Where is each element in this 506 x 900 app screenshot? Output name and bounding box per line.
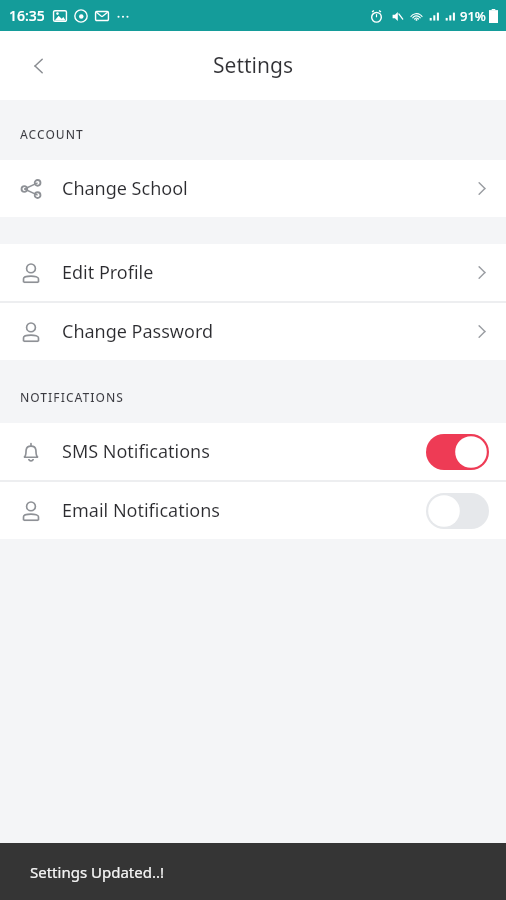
staticText: Settings Updated..! — [30, 862, 164, 882]
staticText: ACCOUNT — [20, 126, 84, 142]
button[interactable]: Email Notifications off — [426, 493, 489, 529]
button[interactable]: Email Notifications — [0, 482, 506, 539]
staticText: Change School — [62, 176, 456, 201]
staticText: Settings — [213, 51, 293, 80]
button[interactable]: Change Password — [0, 303, 506, 360]
button[interactable]: Edit Profile — [0, 244, 506, 301]
staticText: SMS Notifications — [62, 439, 426, 464]
staticText: Change Password — [62, 319, 456, 344]
staticText: 91% — [460, 7, 486, 25]
button[interactable]: Back — [16, 43, 62, 89]
staticText: Email Notifications — [62, 498, 426, 523]
button[interactable]: SMS Notifications on — [426, 434, 489, 470]
button[interactable]: SMS Notifications — [0, 423, 506, 480]
button[interactable]: Change School — [0, 160, 506, 217]
staticText: 16:35 — [9, 6, 45, 25]
staticText: Edit Profile — [62, 260, 456, 285]
staticText: NOTIFICATIONS — [20, 389, 124, 405]
